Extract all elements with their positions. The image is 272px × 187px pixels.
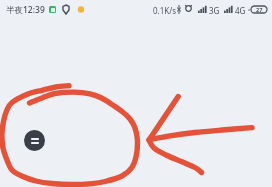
staticText: 0.1K/s	[153, 5, 177, 16]
staticText: 4G	[235, 5, 246, 16]
button[interactable]: Menu	[24, 130, 45, 151]
staticText: 3G	[209, 5, 220, 16]
staticText: 半夜12:39	[6, 4, 45, 16]
staticText: 27	[256, 6, 263, 13]
